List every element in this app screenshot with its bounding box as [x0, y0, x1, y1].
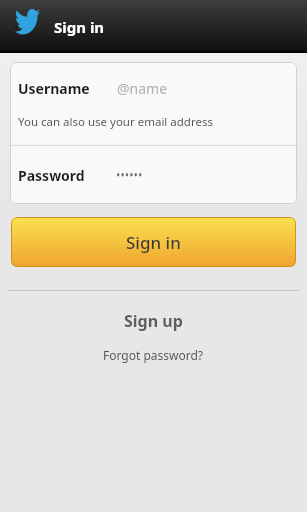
staticText: Username [18, 79, 90, 98]
staticText: Forgot password? [103, 347, 204, 363]
staticText: Sign up [124, 310, 183, 332]
button[interactable]: Forgot password? [0, 347, 307, 363]
staticText: Sign in [126, 231, 181, 254]
staticText: Sign in [54, 17, 105, 37]
staticText: You can also use your email address [18, 114, 213, 130]
button[interactable]: Sign in [11, 217, 296, 267]
button[interactable]: Sign up [0, 310, 307, 332]
staticText: Password [18, 166, 85, 185]
button[interactable]: Password [10, 146, 297, 204]
button[interactable]: Username [10, 62, 297, 98]
staticText: @name [117, 79, 168, 98]
